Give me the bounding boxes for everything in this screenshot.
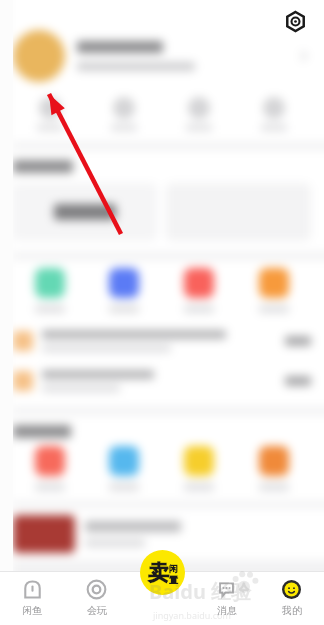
staticText: 会玩: [87, 604, 107, 617]
button[interactable]: [236, 446, 311, 491]
button[interactable]: 我的: [259, 572, 324, 625]
button[interactable]: [161, 446, 236, 491]
staticText: jingyan.baidu.com: [153, 609, 231, 621]
button[interactable]: [13, 268, 87, 313]
button[interactable]: [13, 183, 157, 241]
button[interactable]: 会玩: [64, 572, 129, 625]
staticText: 卖: [148, 560, 169, 586]
button[interactable]: [0, 508, 324, 560]
button[interactable]: 闲鱼: [0, 572, 64, 625]
button[interactable]: 卖闲置: [140, 550, 185, 595]
button[interactable]: [13, 446, 87, 491]
button[interactable]: Settings: [282, 8, 308, 34]
button[interactable]: [87, 268, 161, 313]
button[interactable]: [87, 446, 161, 491]
staticText: 闲鱼: [22, 604, 42, 617]
staticText: Baidu 经验: [149, 578, 252, 605]
staticText: 消息: [217, 604, 237, 617]
button[interactable]: [161, 268, 236, 313]
button[interactable]: [0, 321, 324, 361]
button[interactable]: [236, 268, 311, 313]
button[interactable]: [0, 361, 324, 401]
staticText: 闲: [169, 563, 178, 574]
button[interactable]: 消息: [194, 572, 259, 625]
button[interactable]: [0, 30, 324, 82]
staticText: 置: [169, 574, 178, 585]
staticText: 我的: [282, 604, 302, 617]
